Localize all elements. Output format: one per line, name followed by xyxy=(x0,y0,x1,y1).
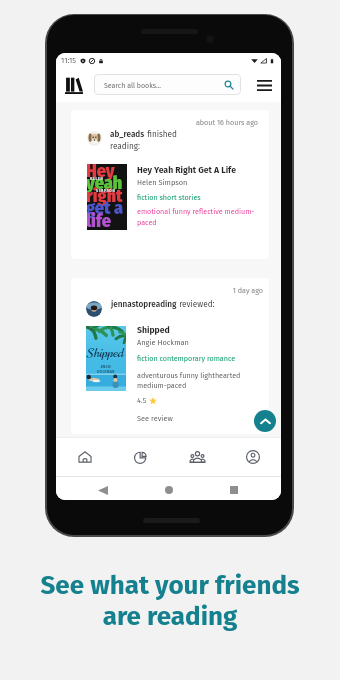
staticText: get a xyxy=(87,197,124,219)
button[interactable]: Scroll to top xyxy=(254,410,276,432)
staticText: Helen Simpson xyxy=(137,178,188,187)
staticText: Search all books... xyxy=(104,81,162,89)
staticText: 4.5 xyxy=(137,396,147,405)
staticText: finished xyxy=(145,129,177,139)
button[interactable]: Search all books... xyxy=(94,74,241,95)
staticText: Hey Yeah Right Get A Life xyxy=(137,165,236,175)
button[interactable]: Library xyxy=(62,73,86,97)
staticText: Shipped xyxy=(87,344,124,362)
staticText: 11:15 xyxy=(61,56,76,65)
staticText: ab_reads xyxy=(110,129,145,139)
staticText: emotional funny reflective medium-paced xyxy=(137,207,257,227)
staticText: fiction contemporary romance xyxy=(137,354,236,363)
staticText: HELEN xyxy=(90,177,104,181)
staticText: life xyxy=(87,210,111,230)
staticText: SIMPSON xyxy=(96,189,116,193)
button[interactable]: Friends xyxy=(169,437,225,477)
staticText: ANGIE HOCKMAN xyxy=(97,365,115,374)
button[interactable]: about 16 hours ago xyxy=(71,110,269,259)
button[interactable]: Home xyxy=(56,437,113,477)
staticText: reading: xyxy=(110,141,140,151)
button[interactable]: Stats xyxy=(113,437,169,477)
staticText: jennastopreading xyxy=(111,299,177,309)
button[interactable]: See review xyxy=(137,414,173,423)
button[interactable]: Menu xyxy=(252,73,276,97)
button[interactable]: Profile xyxy=(225,437,281,477)
button[interactable]: Back xyxy=(94,481,112,499)
staticText: Hey xyxy=(87,164,115,182)
staticText: Shipped xyxy=(137,325,170,335)
staticText: 1 day ago xyxy=(71,286,263,295)
staticText: yeah xyxy=(87,172,123,194)
staticText: fiction short stories xyxy=(137,193,201,202)
staticText: See what your friends are reading xyxy=(40,570,300,632)
staticText: right xyxy=(87,185,123,207)
staticText: Angie Hockman xyxy=(137,338,189,347)
staticText: reviewed: xyxy=(177,299,215,309)
button[interactable]: Home xyxy=(160,481,178,499)
button[interactable]: 1 day ago xyxy=(71,278,269,434)
staticText: about 16 hours ago xyxy=(71,118,258,127)
button[interactable]: Recents xyxy=(225,481,243,499)
staticText: adventurous funny lighthearted medium-pa… xyxy=(137,371,257,390)
